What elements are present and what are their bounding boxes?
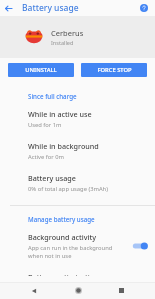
button[interactable]: FORCE STOP [81,63,147,77]
staticText: While in active use [28,109,92,119]
staticText: Installed [51,39,74,46]
button[interactable]: While in active use [0,103,155,135]
staticText: While in background [28,141,99,151]
button[interactable]: Help [136,0,152,16]
button[interactable]: UNINSTALL [8,63,74,77]
button[interactable]: Back [25,282,43,299]
staticText: 0% of total app usage (3mAh) [28,185,108,193]
button[interactable]: Battery optimization [0,266,155,282]
staticText: Battery usage [28,173,76,183]
staticText: UNINSTALL [25,66,57,74]
staticText: Manage battery usage [28,215,95,223]
button[interactable]: Battery usage [0,167,155,199]
staticText: Background activity [28,232,97,242]
staticText: Used for 1m [28,121,62,129]
button[interactable]: Home [69,282,87,299]
staticText: Battery optimization [28,272,99,276]
staticText: Cerberus [51,28,84,38]
button[interactable]: While in background [0,135,155,167]
button[interactable]: Recent apps [112,282,130,299]
button[interactable]: Background activity [0,226,155,266]
staticText: App can run in the background when not i… [28,244,125,260]
button[interactable]: Back [0,0,16,16]
staticText: FORCE STOP [97,66,132,74]
staticText: Active for 0m [28,153,64,161]
staticText: Battery usage [22,2,79,14]
staticText: Since full charge [28,92,77,100]
other: Background activity toggle [131,240,149,252]
